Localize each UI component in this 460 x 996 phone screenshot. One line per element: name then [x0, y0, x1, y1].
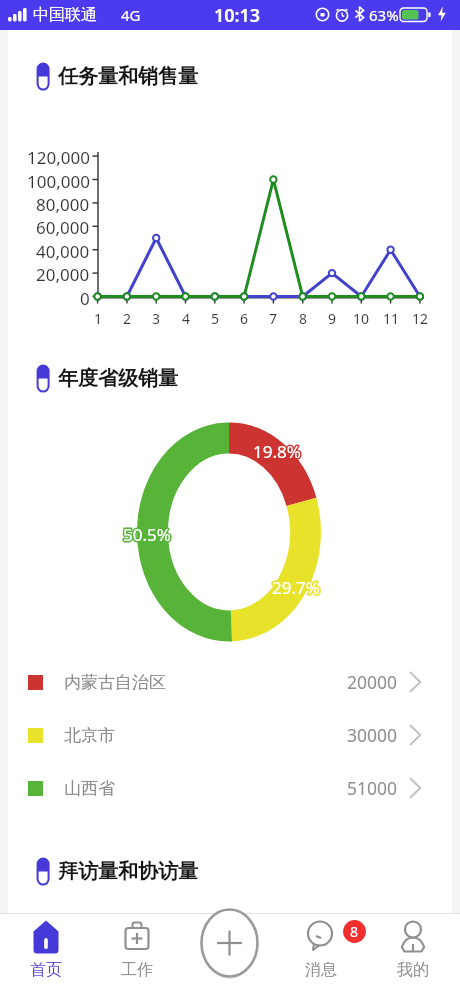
staticText: 40,000	[36, 240, 90, 260]
staticText: 10:13	[214, 3, 261, 28]
button[interactable]	[200, 908, 259, 978]
staticText: 80,000	[36, 193, 90, 213]
button[interactable]: 我的	[373, 914, 453, 994]
staticText: 60,000	[36, 216, 90, 236]
staticText: 0	[80, 287, 90, 307]
staticText: 8	[350, 922, 359, 941]
staticText: 8	[299, 309, 308, 328]
staticText: 51000	[347, 776, 398, 800]
staticText: 1	[94, 309, 103, 328]
staticText: 年度省级销量	[58, 366, 178, 391]
staticText: 我的	[397, 960, 429, 980]
button[interactable]: 首页	[6, 914, 86, 994]
staticText: 3	[152, 309, 161, 328]
staticText: 4	[182, 309, 191, 328]
staticText: 19.8%	[253, 440, 301, 463]
staticText: 山西省	[64, 778, 115, 799]
staticText: 50.5%	[123, 523, 171, 546]
staticText: 内蒙古自治区	[64, 672, 166, 693]
button[interactable]: 北京市	[18, 710, 430, 760]
staticText: 6	[240, 309, 249, 328]
staticText: 20,000	[36, 263, 90, 283]
staticText: 拜访量和协访量	[58, 859, 198, 884]
staticText: 2	[123, 309, 132, 328]
staticText: 19.8%	[253, 440, 301, 463]
button[interactable]: 内蒙古自治区	[18, 657, 430, 707]
staticText: 10	[353, 309, 370, 328]
staticText: 首页	[30, 960, 62, 980]
staticText: 12	[412, 309, 429, 328]
staticText: 北京市	[64, 725, 115, 746]
staticText: 中国联通	[33, 5, 97, 25]
button[interactable]: 山西省	[18, 763, 430, 813]
staticText: 50.5%	[123, 523, 171, 546]
button[interactable]: 工作	[97, 914, 177, 994]
staticText: 消息	[305, 960, 337, 980]
staticText: 工作	[121, 960, 153, 980]
staticText: 任务量和销售量	[58, 64, 198, 89]
staticText: 120,000	[27, 146, 90, 166]
button[interactable]: 消息	[281, 914, 361, 994]
staticText: 63%	[369, 5, 399, 25]
staticText: 9	[328, 309, 337, 328]
staticText: 11	[383, 309, 400, 328]
staticText: 30000	[347, 723, 398, 747]
staticText: 7	[269, 309, 278, 328]
staticText: 100,000	[27, 170, 90, 190]
staticText: 4G	[121, 5, 141, 25]
staticText: 29.7%	[272, 576, 320, 599]
staticText: 20000	[347, 670, 398, 694]
staticText: 29.7%	[272, 576, 320, 599]
staticText: 5	[211, 309, 220, 328]
